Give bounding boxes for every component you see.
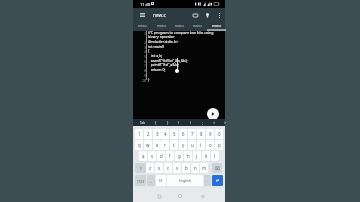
staticText: 5 — [173, 131, 176, 137]
button[interactable]: Run — [207, 108, 219, 120]
staticText: 11:48 — [140, 2, 151, 8]
button[interactable]: Home — [175, 191, 185, 201]
button[interactable]: new.c — [134, 22, 152, 31]
button[interactable]: v — [173, 163, 181, 173]
staticText: c — [167, 165, 170, 171]
button[interactable]: d — [157, 151, 165, 161]
button[interactable]: < — [208, 119, 220, 126]
staticText: scanf("%d%d",&a,&b); — [148, 58, 188, 63]
staticText: . — [207, 178, 208, 183]
button[interactable]: e — [153, 140, 161, 150]
button[interactable]: b — [182, 163, 190, 173]
staticText: e — [156, 142, 159, 148]
button[interactable]: n — [191, 163, 199, 173]
button[interactable]: Enter — [212, 175, 223, 186]
button[interactable]: 3 — [153, 129, 161, 139]
button[interactable]: y — [179, 140, 187, 150]
button[interactable]: p — [215, 140, 223, 150]
staticText: 3 — [156, 131, 159, 137]
staticText: #include<stdio.h> — [148, 39, 179, 44]
button[interactable]: } — [162, 119, 174, 126]
button[interactable]: , — [147, 175, 155, 186]
staticText: r — [164, 142, 166, 148]
button[interactable]: g — [175, 151, 183, 161]
staticText: { — [155, 120, 157, 125]
staticText: ; — [202, 120, 203, 125]
button[interactable]: ; — [196, 119, 208, 126]
staticText: < — [213, 120, 215, 125]
button[interactable]: f — [166, 151, 174, 161]
staticText: l — [214, 153, 216, 159]
button[interactable]: j — [193, 151, 201, 161]
staticText: y — [182, 142, 185, 148]
staticText: w — [146, 142, 150, 148]
button[interactable]: { — [150, 119, 162, 126]
button[interactable]: t — [170, 140, 178, 150]
button[interactable]: More options — [214, 10, 224, 20]
button[interactable]: new.c — [171, 22, 189, 31]
button[interactable]: 2 — [144, 129, 152, 139]
staticText: 9 — [144, 73, 146, 77]
staticText: > — [224, 120, 226, 125]
button[interactable]: k — [202, 151, 210, 161]
button[interactable]: Change keyboard — [156, 175, 166, 186]
button[interactable]: u — [188, 140, 196, 150]
button[interactable]: Navigation menu — [137, 10, 147, 20]
staticText: 3 — [144, 45, 146, 49]
button[interactable]: a — [139, 151, 147, 161]
staticText: m — [202, 165, 207, 171]
button[interactable]: ( — [173, 119, 185, 126]
button[interactable]: s — [148, 151, 156, 161]
staticText: 8 — [200, 131, 203, 137]
button[interactable]: English — [167, 175, 203, 186]
button[interactable]: 6 — [179, 129, 187, 139]
button[interactable]: 4 — [161, 129, 169, 139]
button[interactable]: i — [197, 140, 205, 150]
staticText: new.c — [138, 23, 148, 28]
button[interactable]: Recents — [154, 191, 164, 201]
button[interactable]: q — [135, 140, 143, 150]
button[interactable]: 5 — [170, 129, 178, 139]
button[interactable]: Backspace — [212, 163, 222, 173]
staticText: d — [160, 153, 163, 159]
button[interactable]: ) — [185, 119, 197, 126]
button[interactable]: ?123 — [135, 175, 146, 186]
button[interactable]: 9 — [206, 129, 214, 139]
button[interactable]: Hint — [202, 10, 212, 20]
button[interactable]: 0 — [215, 129, 223, 139]
button[interactable]: c — [164, 163, 172, 173]
button[interactable]: h — [184, 151, 192, 161]
button[interactable]: new.c — [189, 22, 207, 31]
staticText: 7 — [144, 63, 146, 67]
button[interactable]: o — [206, 140, 214, 150]
button[interactable]: x — [155, 163, 163, 173]
button[interactable]: Shift — [135, 163, 146, 173]
staticText: i — [200, 142, 202, 148]
button[interactable]: w — [144, 140, 152, 150]
button[interactable]: new.c — [208, 22, 226, 31]
button[interactable]: 7 — [188, 129, 196, 139]
staticText: f — [169, 153, 171, 159]
button[interactable]: > — [219, 119, 231, 126]
staticText: ⇧ — [139, 166, 143, 171]
button[interactable]: 1 — [135, 129, 143, 139]
staticText: b — [185, 165, 188, 171]
staticText: Tab — [140, 121, 146, 125]
button[interactable]: new.c — [153, 22, 171, 31]
button[interactable]: Save — [190, 10, 200, 20]
button[interactable]: z — [146, 163, 154, 173]
button[interactable]: l — [211, 151, 219, 161]
staticText: 4 — [164, 131, 167, 137]
staticText: o — [209, 142, 212, 148]
button[interactable]: 8 — [197, 129, 205, 139]
button[interactable]: Back — [197, 191, 207, 201]
staticText: ☷ — [159, 178, 163, 183]
staticText: 0 — [218, 131, 221, 137]
staticText: new.c — [193, 23, 203, 28]
staticText: 8 — [144, 68, 146, 72]
button[interactable]: r — [161, 140, 169, 150]
staticText: t — [173, 142, 175, 148]
button[interactable]: m — [200, 163, 208, 173]
staticText: ) — [190, 120, 192, 125]
